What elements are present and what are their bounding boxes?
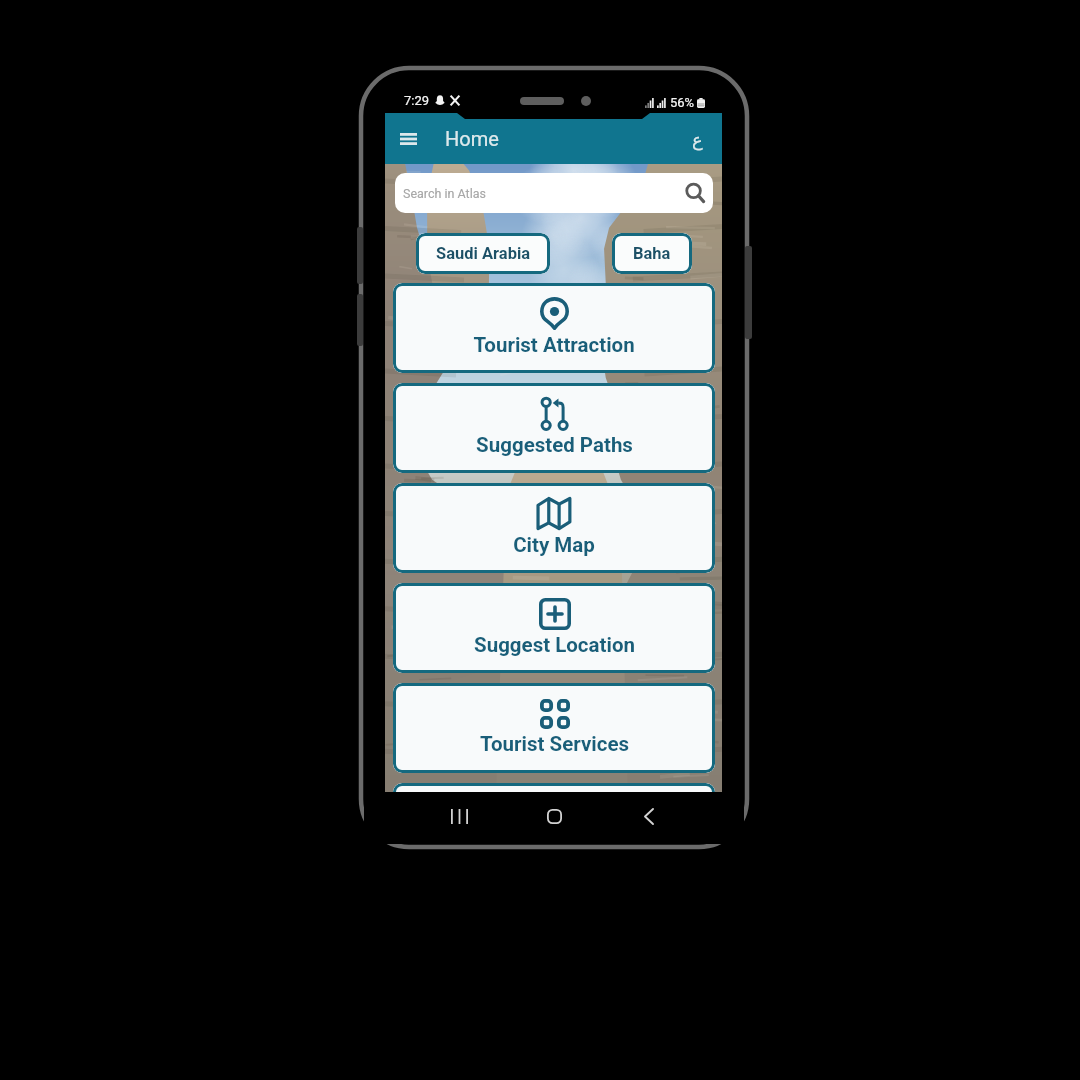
button[interactable]: Back bbox=[625, 797, 673, 835]
button[interactable]: Suggest Location bbox=[393, 583, 715, 673]
staticText: Saudi Arabia bbox=[436, 244, 531, 263]
staticText: Search in Atlas bbox=[403, 186, 486, 201]
button[interactable]: Tourist Services bbox=[393, 683, 715, 773]
staticText: Suggested Paths bbox=[476, 433, 633, 457]
button[interactable]: Home bbox=[530, 797, 578, 835]
button[interactable]: Baha bbox=[612, 233, 692, 274]
button[interactable]: Search in Atlas bbox=[395, 173, 713, 213]
button[interactable]: Open navigation menu bbox=[390, 121, 426, 157]
button[interactable]: Suggested Paths bbox=[393, 383, 715, 473]
button[interactable]: City Map bbox=[393, 483, 715, 573]
button[interactable]: Events bbox=[393, 783, 715, 792]
button[interactable]: Recent apps bbox=[435, 797, 483, 835]
staticText: Tourist Attraction bbox=[473, 333, 635, 357]
button[interactable]: Switch language to Arabic bbox=[681, 123, 713, 155]
button[interactable]: Saudi Arabia bbox=[416, 233, 550, 274]
staticText: Baha bbox=[633, 244, 671, 263]
staticText: Tourist Services bbox=[480, 732, 629, 756]
staticText: ع bbox=[692, 129, 703, 150]
staticText: Suggest Location bbox=[474, 633, 635, 657]
staticText: Home bbox=[445, 127, 499, 150]
staticText: City Map bbox=[513, 533, 595, 557]
button[interactable]: Tourist Attraction bbox=[393, 283, 715, 373]
staticText: 7:29 bbox=[404, 93, 430, 108]
staticText: 56% bbox=[670, 95, 695, 110]
